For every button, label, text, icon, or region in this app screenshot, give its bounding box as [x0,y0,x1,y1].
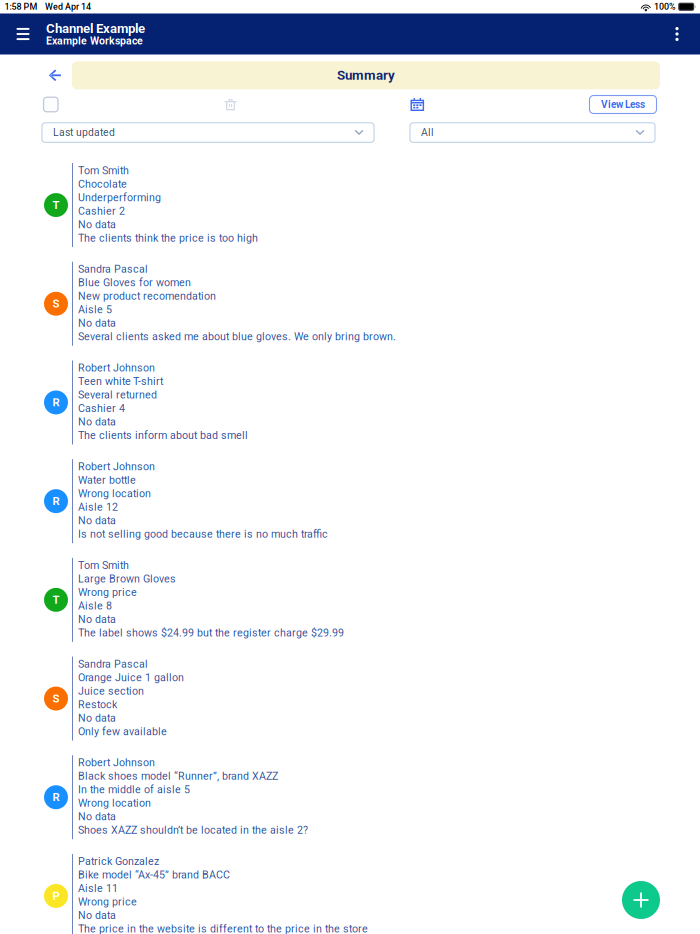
staticText: R [52,791,59,804]
staticText: No data [78,613,116,626]
staticText: The clients inform about bad smell [78,429,248,442]
button[interactable]: T [0,550,700,649]
button[interactable]: S [0,254,700,353]
staticText: No data [78,514,116,527]
staticText: S [52,297,59,310]
button[interactable]: Back [38,61,72,89]
staticText: No data [78,909,116,922]
staticText: Is not selling good because there is no … [78,528,328,540]
staticText: Several clients asked me about blue glov… [78,330,396,343]
button[interactable]: More options [659,13,695,54]
staticText: 1:58 PM [5,1,38,12]
button[interactable]: Last updated [42,123,374,142]
staticText: Cashier 2 [78,205,125,217]
button[interactable]: Add [622,881,660,919]
staticText: No data [78,218,116,231]
staticText: Tom Smith [78,559,129,571]
staticText: 100% [654,1,676,12]
staticText: Restock [78,698,117,711]
staticText: The clients think the price is too high [78,232,258,244]
button[interactable]: Select all [37,93,64,115]
staticText: Teen white T-shirt [78,375,163,388]
staticText: Robert Johnson [78,756,155,769]
staticText: Channel Example [46,21,145,36]
staticText: Robert Johnson [78,362,155,374]
staticText: Large Brown Gloves [78,572,176,585]
staticText: All [421,126,434,139]
staticText: Wed Apr 14 [45,1,91,12]
staticText: Several returned [78,389,157,401]
staticText: Underperforming [78,191,161,204]
staticText: Patrick Gonzalez [78,855,159,868]
staticText: Juice section [78,685,144,697]
button[interactable]: Delete [216,93,244,115]
staticText: New product recomendation [78,290,216,302]
staticText: Shoes XAZZ shouldn’t be located in the a… [78,824,308,836]
staticText: Wrong location [78,797,151,809]
staticText: Wrong price [78,896,137,908]
staticText: Aisle 5 [78,303,112,316]
staticText: Wrong location [78,487,151,500]
staticText: No data [78,810,116,823]
staticText: Only few available [78,725,167,738]
staticText: The label shows $24.99 but the register … [78,627,344,639]
staticText: Cashier 4 [78,402,125,415]
staticText: No data [78,712,116,724]
button[interactable]: R [0,748,700,847]
staticText: Bike model “Ax-45” brand BACC [78,869,230,881]
staticText: Sandra Pascal [78,658,148,670]
staticText: R [52,494,59,508]
staticText: Water bottle [78,474,136,486]
button[interactable]: R [0,353,700,452]
staticText: R [52,396,59,409]
staticText: The price in the website is different to… [78,923,368,934]
button[interactable]: View Less [589,95,656,113]
staticText: Orange Juice 1 gallon [78,671,184,684]
staticText: Sandra Pascal [78,263,148,275]
button[interactable]: All [410,123,655,142]
staticText: Summary [337,67,395,83]
staticText: Black shoes model “Runner”, brand XAZZ [78,770,278,782]
button[interactable]: Menu [0,13,46,54]
button[interactable]: S [0,649,700,748]
staticText: T [52,593,59,606]
staticText: Wrong price [78,586,137,598]
button[interactable]: Calendar [403,93,431,115]
staticText: P [52,889,59,903]
staticText: No data [78,416,116,428]
staticText: Aisle 8 [78,600,112,612]
button[interactable]: P [0,847,700,934]
staticText: T [52,198,59,212]
staticText: View Less [601,99,645,110]
staticText: Tom Smith [78,164,129,177]
staticText: Aisle 11 [78,882,118,895]
staticText: Blue Gloves for women [78,276,191,289]
staticText: Example Workspace [46,35,143,47]
staticText: In the middle of aisle 5 [78,783,190,796]
staticText: No data [78,317,116,329]
staticText: Last updated [53,126,115,139]
button[interactable]: R [0,452,700,550]
button[interactable]: T [0,156,700,254]
staticText: S [52,692,59,705]
staticText: Robert Johnson [78,460,155,473]
staticText: Chocolate [78,178,127,190]
staticText: Aisle 12 [78,501,118,513]
